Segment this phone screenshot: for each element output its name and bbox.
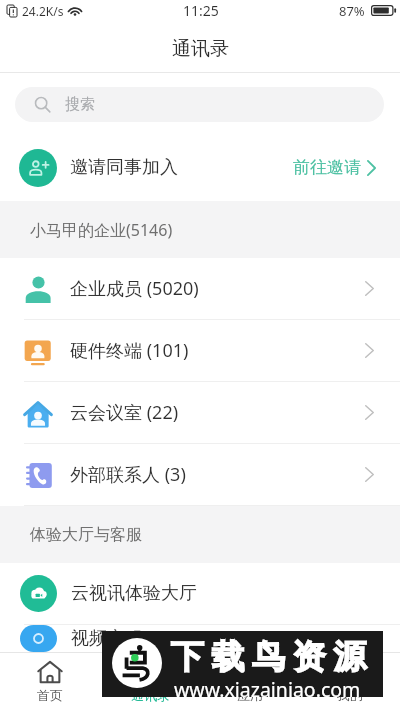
button[interactable]: 邀请同事加入: [0, 134, 400, 201]
button[interactable]: 企业成员 (5020): [0, 258, 400, 319]
button[interactable]: 应用: [200, 653, 300, 703]
staticText: 搜索: [65, 95, 95, 114]
staticText: 外部联系人 (3): [70, 462, 186, 487]
staticText: 87%: [339, 2, 365, 20]
staticText: 硬件终端 (101): [70, 338, 189, 363]
staticText: 云会议室 (22): [70, 400, 179, 425]
staticText: 邀请同事加入: [70, 156, 178, 179]
staticText: 小马甲的企业(5146): [30, 219, 173, 241]
button[interactable]: 云会议室 (22): [0, 382, 400, 443]
staticText: 24.2K/s: [22, 3, 64, 19]
button[interactable]: 硬件终端 (101): [0, 320, 400, 381]
staticText: www.xiazainiao.com: [174, 676, 361, 703]
staticText: 11:25: [183, 1, 219, 20]
staticText: 前往邀请: [293, 157, 361, 178]
staticText: 企业成员 (5020): [70, 276, 199, 301]
button[interactable]: 搜索: [15, 87, 384, 122]
staticText: 应用: [237, 687, 263, 703]
button[interactable]: 通讯录: [100, 653, 200, 703]
button[interactable]: 视频客服: [0, 625, 400, 652]
staticText: 云视讯体验大厅: [71, 582, 197, 605]
staticText: 视频客服: [71, 627, 143, 650]
button[interactable]: 首页: [0, 653, 100, 703]
staticText: 通讯录: [131, 687, 170, 703]
button[interactable]: 云视讯体验大厅: [0, 563, 400, 624]
staticText: 首页: [37, 687, 63, 703]
button[interactable]: 外部联系人 (3): [0, 444, 400, 505]
staticText: 我的: [337, 687, 363, 703]
staticText: 体验大厅与客服: [30, 525, 142, 545]
staticText: 下载鸟资源: [167, 636, 370, 678]
staticText: 通讯录: [172, 37, 229, 61]
button[interactable]: 我的: [300, 653, 400, 703]
